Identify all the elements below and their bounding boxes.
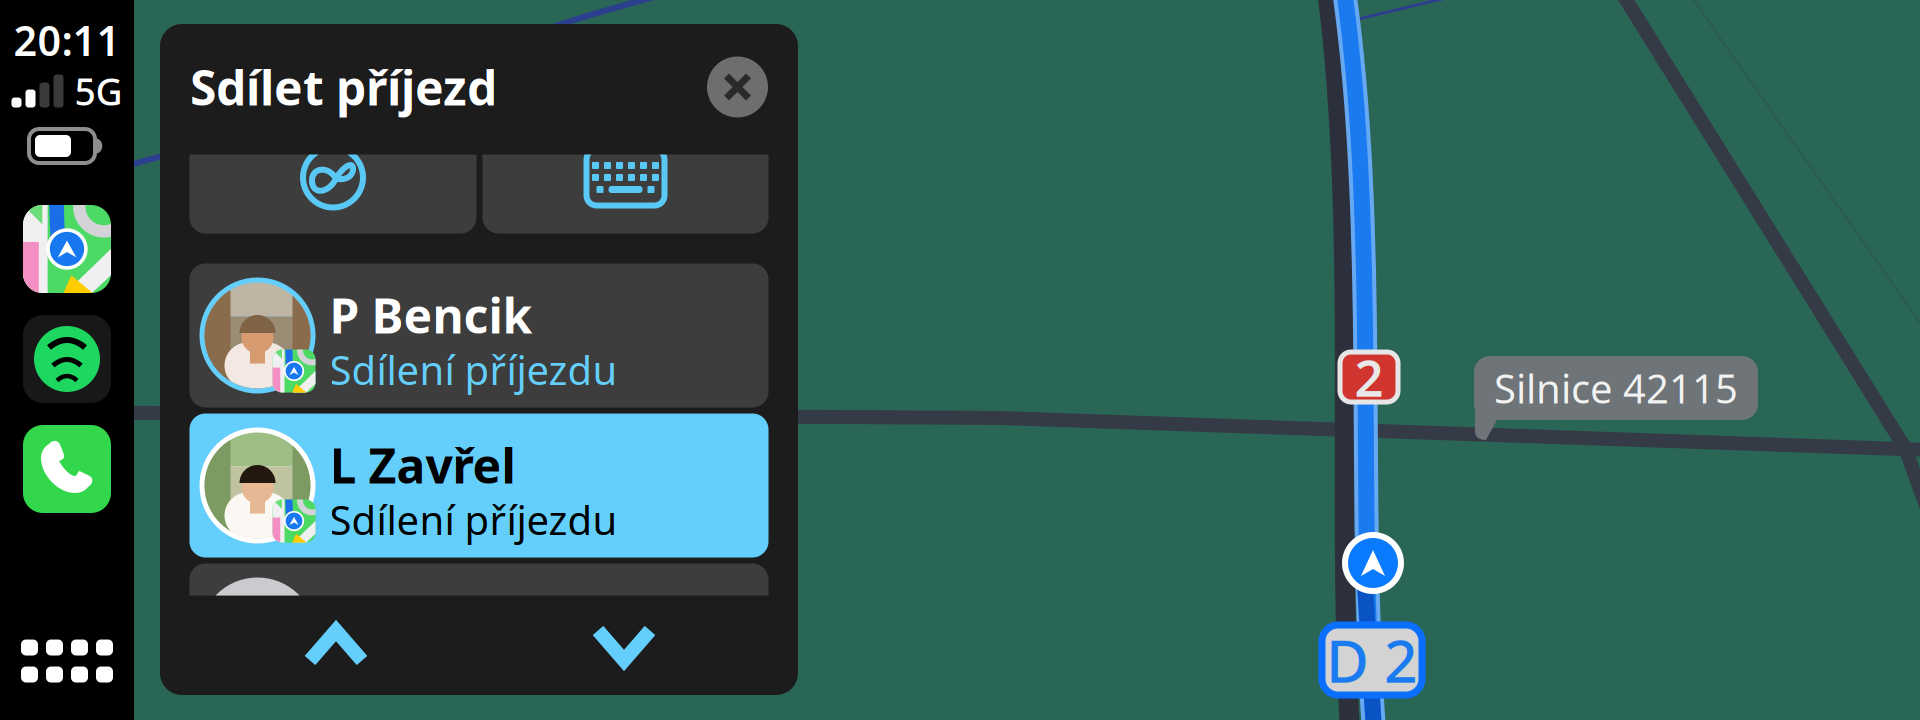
button[interactable]: Nahoru bbox=[283, 603, 389, 687]
button[interactable]: Dolů bbox=[571, 603, 677, 687]
staticText: Silnice 42115 bbox=[1494, 361, 1738, 414]
button[interactable]: Zavřít bbox=[707, 56, 768, 117]
staticText: Sdílení příjezdu bbox=[329, 343, 617, 396]
staticText: 5G bbox=[74, 66, 122, 116]
button[interactable]: Všechny aplikace bbox=[21, 639, 113, 682]
staticText: Sdílení příjezdu bbox=[329, 493, 617, 546]
staticText: L Zavřel bbox=[329, 433, 515, 497]
button[interactable]: L Zavřel bbox=[189, 413, 768, 557]
button[interactable]: Klávesnice bbox=[482, 121, 768, 233]
staticText: 20:11 bbox=[13, 13, 120, 67]
staticText: P Bencik bbox=[329, 283, 532, 347]
button[interactable]: P Bencik bbox=[189, 263, 768, 407]
button[interactable]: Mapy bbox=[23, 205, 111, 293]
button[interactable]: Další kontakt bbox=[189, 563, 768, 707]
staticText: 2 bbox=[1354, 343, 1383, 411]
staticText: D 2 bbox=[1326, 621, 1418, 699]
button[interactable]: SharePlay bbox=[189, 121, 476, 233]
button[interactable]: Telefon bbox=[23, 425, 111, 513]
button[interactable]: Spotify bbox=[23, 315, 111, 403]
staticText: Sdílet příjezd bbox=[190, 55, 497, 119]
